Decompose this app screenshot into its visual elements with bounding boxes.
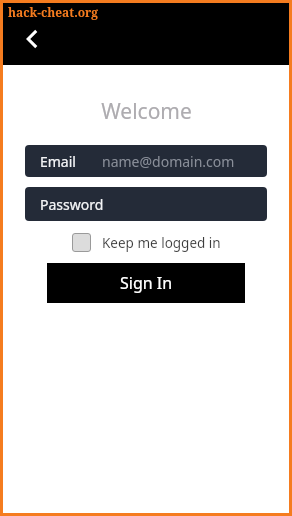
- button[interactable]: Password: [25, 187, 267, 221]
- staticText: Welcome: [101, 97, 192, 126]
- button[interactable]: Keep me logged in: [68, 231, 225, 254]
- button[interactable]: Email: [25, 145, 267, 177]
- staticText: Email: [40, 152, 76, 171]
- staticText: name@domain.com: [102, 152, 235, 171]
- staticText: Sign In: [120, 272, 173, 294]
- button[interactable]: Back: [13, 19, 53, 59]
- staticText: hack-cheat.org: [8, 4, 99, 20]
- staticText: Password: [40, 195, 104, 214]
- button[interactable]: Sign In: [47, 263, 245, 303]
- staticText: Keep me logged in: [102, 234, 221, 252]
